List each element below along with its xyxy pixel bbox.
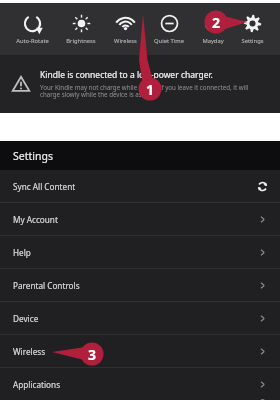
button[interactable]: Settings [239,11,266,48]
button[interactable]: Quiet Time [152,11,186,48]
button[interactable]: Sync All Content [0,170,280,202]
staticText: Help [13,247,31,258]
staticText: Your Kindle may not charge while in use.… [40,83,270,99]
button[interactable]: Applications [0,368,280,400]
button[interactable]: Wireless [0,335,280,367]
staticText: My Account [13,214,58,225]
staticText: Quiet Time [154,37,184,45]
button[interactable]: Wireless [112,11,139,48]
staticText: Device [13,313,39,324]
staticText: Wireless [114,37,137,45]
staticText: 2 [212,13,221,32]
button[interactable]: Help [0,236,280,268]
staticText: Parental Controls [13,280,80,291]
staticText: 3 [88,345,97,364]
button[interactable]: Parental Controls [0,269,280,301]
staticText: Auto-Rotate [16,37,49,45]
button[interactable]: Brightness [64,11,98,48]
button[interactable]: My Account [0,203,280,235]
button[interactable]: Mayday [200,11,226,48]
staticText: Kindle is connected to a low-power charg… [40,69,213,81]
staticText: Wireless [13,346,46,357]
staticText: Brightness [66,37,96,45]
staticText: Applications [13,379,61,390]
staticText: Sync All Content [13,181,76,192]
button[interactable]: Device [0,302,280,334]
staticText: Settings [241,37,264,45]
button[interactable]: Auto-Rotate [14,11,51,48]
staticText: Mayday [202,37,224,45]
staticText: Settings [13,149,53,163]
staticText: 1 [146,80,155,99]
